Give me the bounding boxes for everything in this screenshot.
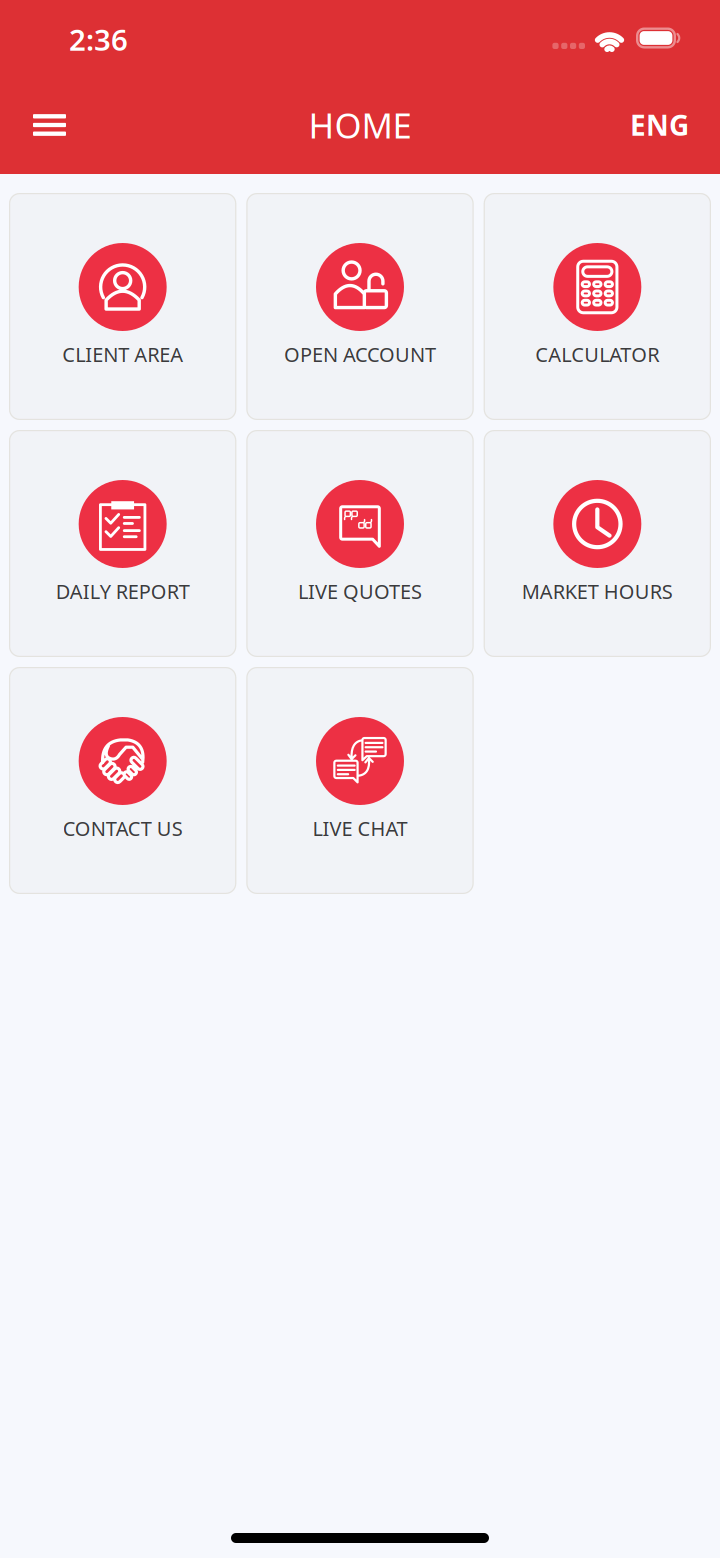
staticText: LIVE QUOTES [298, 578, 422, 605]
staticText: 2:36 [69, 20, 128, 59]
button[interactable]: CLIENT AREA [9, 193, 236, 420]
button[interactable]: CALCULATOR [484, 193, 711, 420]
button[interactable]: Menu [33, 94, 91, 156]
staticText: HOME [308, 102, 411, 148]
button[interactable]: DAILY REPORT [9, 430, 236, 657]
staticText: ENG [630, 106, 689, 144]
staticText: LIVE CHAT [312, 815, 407, 842]
staticText: OPEN ACCOUNT [284, 341, 436, 368]
button[interactable]: CONTACT US [9, 667, 236, 894]
button[interactable]: LIVE QUOTES [246, 430, 474, 657]
button[interactable]: ENG [630, 94, 689, 156]
staticText: MARKET HOURS [522, 578, 673, 605]
button[interactable]: LIVE CHAT [246, 667, 474, 894]
button[interactable]: OPEN ACCOUNT [246, 193, 474, 420]
staticText: CALCULATOR [535, 341, 659, 368]
button[interactable]: MARKET HOURS [484, 430, 711, 657]
staticText: DAILY REPORT [56, 578, 190, 605]
staticText: CONTACT US [63, 815, 183, 842]
staticText: CLIENT AREA [62, 341, 183, 368]
